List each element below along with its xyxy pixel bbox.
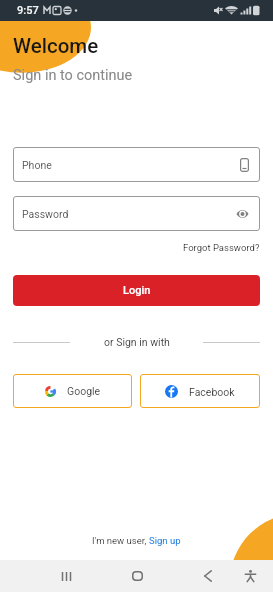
staticText: I'm new user,	[92, 535, 149, 546]
button[interactable]: Forgot Password?	[183, 240, 260, 255]
staticText: Facebook	[189, 386, 235, 398]
button[interactable]: Password	[13, 196, 260, 231]
button[interactable]: Back	[190, 560, 226, 592]
staticText: 9:57	[17, 4, 39, 17]
staticText: Google	[67, 385, 101, 397]
staticText: Sign in to continue	[13, 67, 133, 84]
button[interactable]: I'm new user,	[92, 533, 181, 548]
button[interactable]: Recents	[48, 560, 84, 592]
button[interactable]: Accessibility	[232, 560, 268, 592]
staticText: Welcome	[13, 34, 99, 58]
other: Phone number	[240, 158, 249, 172]
staticText: or Sign in with	[104, 336, 170, 348]
staticText: Sign up	[149, 535, 181, 546]
button[interactable]: Home	[119, 560, 155, 592]
button[interactable]: Phone	[13, 147, 260, 182]
button[interactable]: Login	[13, 275, 260, 306]
staticText: Phone	[22, 159, 52, 171]
staticText: Password	[22, 208, 69, 220]
button[interactable]: Facebook	[140, 374, 260, 408]
other: Show password	[236, 209, 249, 219]
button[interactable]: Google	[13, 374, 132, 408]
staticText: Login	[123, 284, 151, 297]
